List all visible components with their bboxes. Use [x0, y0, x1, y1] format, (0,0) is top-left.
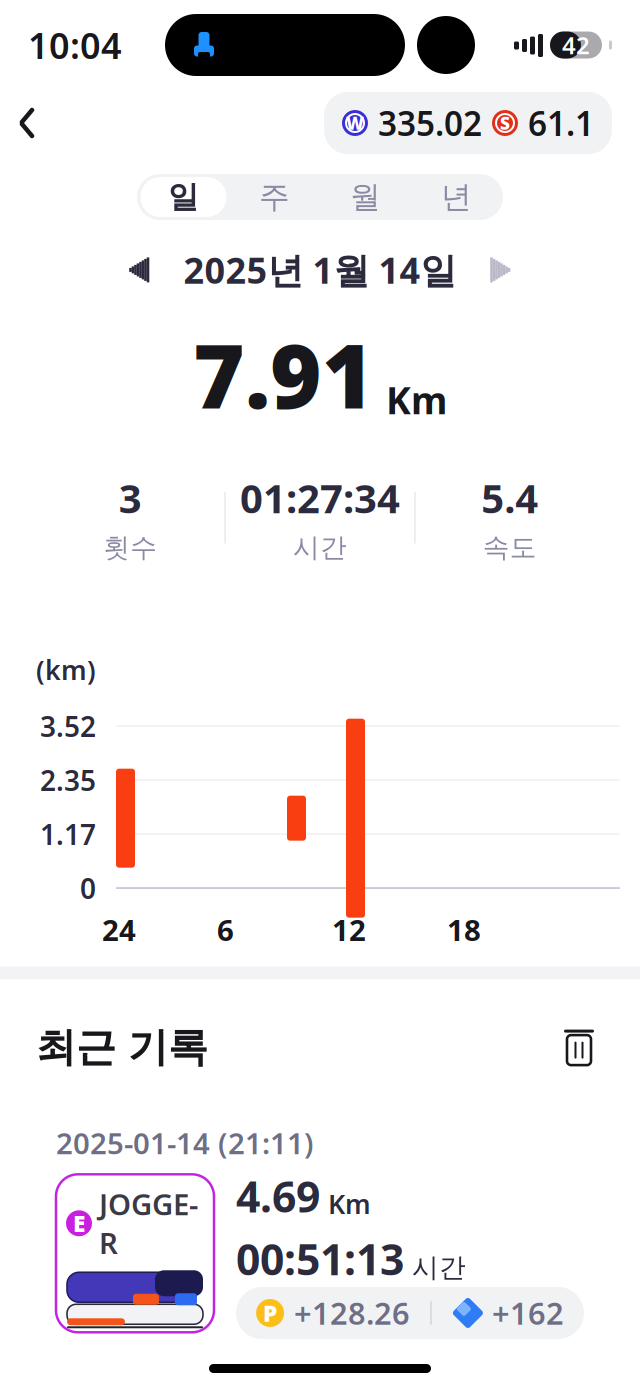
staticText: 0 [80, 869, 96, 907]
staticText: 42 [562, 29, 590, 61]
staticText: W [346, 111, 364, 134]
staticText: 10:04 [28, 21, 122, 69]
staticText: JOGGER [99, 1184, 198, 1262]
staticText: +128.26 [294, 1293, 410, 1333]
staticText: 2.35 [40, 761, 96, 799]
staticText: 6 [217, 910, 234, 949]
button[interactable]: 주 [229, 174, 320, 220]
staticText: 일 [168, 178, 199, 216]
button[interactable]: Previous day [113, 249, 165, 291]
staticText: Km [386, 375, 447, 425]
button[interactable]: Back [0, 98, 54, 148]
staticText: +162 [492, 1293, 564, 1333]
button[interactable]: 2025-01-14 (21:11) [0, 1105, 640, 1350]
button[interactable]: 월 [320, 174, 411, 220]
staticText: 2025-01-14 (21:11) [56, 1123, 314, 1162]
staticText: 속도 [483, 531, 537, 564]
button[interactable]: 년 [411, 174, 502, 220]
staticText: E [73, 1208, 85, 1238]
staticText: 횟수 [103, 531, 157, 564]
staticText: 주 [259, 178, 290, 216]
staticText: 335.02 [378, 101, 482, 145]
staticText: P [263, 1298, 277, 1328]
staticText: 시간 [293, 531, 347, 564]
staticText: S [500, 111, 510, 134]
staticText: 4.69 [236, 1168, 320, 1224]
staticText: 18 [447, 910, 481, 949]
staticText: 3.52 [40, 707, 96, 745]
staticText: 5.4 [481, 471, 538, 524]
staticText: 3 [119, 471, 142, 524]
button[interactable]: Delete records [554, 1019, 604, 1075]
staticText: Km [328, 1186, 371, 1221]
staticText: 월 [350, 178, 381, 216]
staticText: 00:51:13 [236, 1230, 404, 1287]
button[interactable]: Next day [474, 249, 526, 291]
button[interactable]: 일 [138, 174, 229, 220]
staticText: 7.91 [193, 316, 374, 433]
staticText: (km) [36, 652, 96, 687]
button[interactable]: W [324, 92, 612, 154]
staticText: 24 [102, 910, 136, 949]
staticText: 시간 [412, 1251, 466, 1284]
staticText: 년 [441, 178, 472, 216]
staticText: 61.1 [528, 101, 594, 145]
staticText: 01:27:34 [240, 471, 400, 524]
staticText: 1.17 [40, 815, 96, 853]
staticText: 2025년 1월 14일 [183, 246, 456, 294]
staticText: 최근 기록 [36, 1023, 208, 1072]
staticText: 12 [332, 910, 366, 949]
